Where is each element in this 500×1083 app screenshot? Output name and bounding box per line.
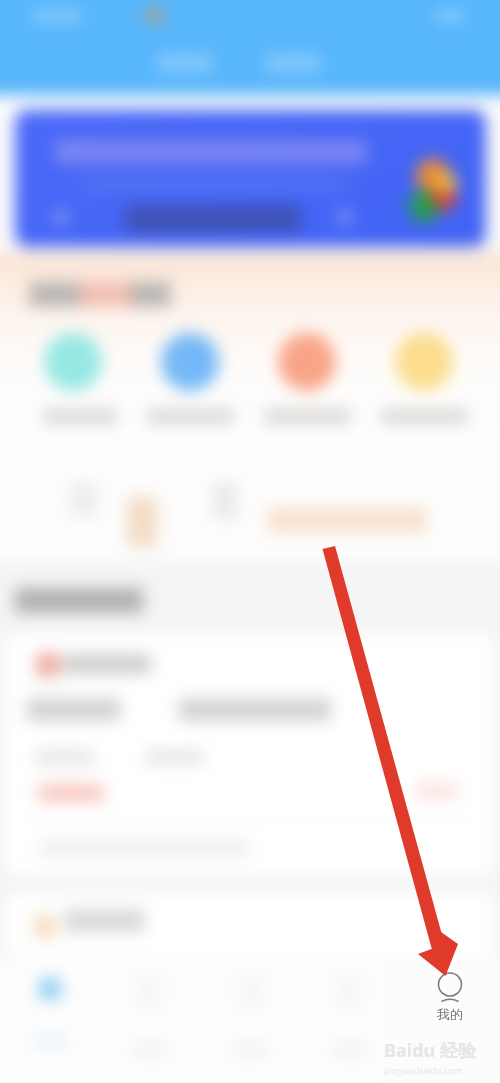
button[interactable]: Tab <box>0 960 100 1083</box>
button[interactable] <box>190 333 307 424</box>
button[interactable]: Tab <box>400 960 500 1083</box>
button[interactable] <box>15 110 486 247</box>
button[interactable] <box>414 782 460 800</box>
button[interactable] <box>6 893 494 959</box>
button[interactable]: 我的 (Me tab) <box>416 965 484 1023</box>
button[interactable] <box>73 333 190 424</box>
staticText: jingyan.baidu.com <box>384 1064 462 1076</box>
button[interactable] <box>0 333 73 424</box>
staticText: Baidu 经验 <box>384 1038 476 1063</box>
button[interactable] <box>307 333 424 424</box>
staticText: 我的 <box>416 1006 484 1022</box>
button[interactable] <box>6 633 494 875</box>
